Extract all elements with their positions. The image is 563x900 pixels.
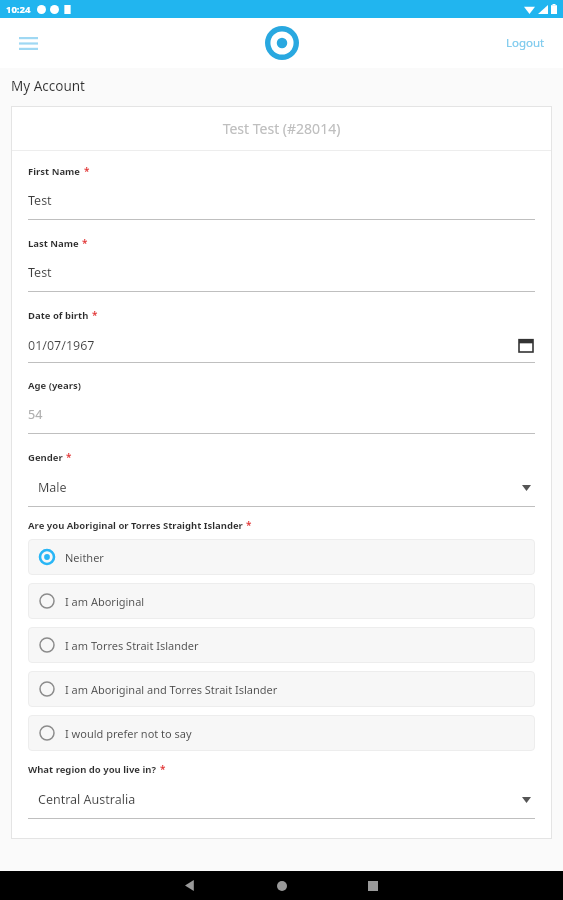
button[interactable]: Male (28, 464, 535, 507)
button[interactable]: Test (28, 250, 535, 292)
staticText: * (246, 518, 252, 532)
staticText: 10:24 (6, 3, 31, 16)
staticText: Age (years) (28, 379, 81, 392)
button[interactable]: Central Australia (28, 776, 535, 819)
staticText: 54 (28, 406, 43, 423)
staticText: * (84, 164, 90, 178)
button[interactable]: Recent apps (327, 871, 418, 900)
button[interactable]: I would prefer not to say (28, 715, 535, 751)
staticText: Date of birth (28, 309, 89, 322)
staticText: Male (38, 479, 67, 496)
staticText: 01/07/1967 (28, 337, 95, 354)
button[interactable]: Home (262, 23, 302, 63)
staticText: What region do you live in? (28, 763, 157, 776)
staticText: Test (28, 192, 52, 209)
staticText: Are you Aboriginal or Torres Straight Is… (28, 519, 243, 532)
staticText: Last Name (28, 237, 79, 250)
button[interactable]: 54 (28, 392, 535, 434)
button[interactable]: I am Aboriginal and Torres Strait Island… (28, 671, 535, 707)
staticText: Logout (506, 35, 545, 51)
staticText: Central Australia (38, 791, 136, 808)
button[interactable]: I am Torres Strait Islander (28, 627, 535, 663)
staticText: My Account (11, 77, 85, 95)
button[interactable]: Back (145, 871, 236, 900)
button[interactable]: Home (236, 871, 327, 900)
staticText: * (82, 236, 88, 250)
staticText: * (66, 450, 72, 464)
staticText: I am Aboriginal (65, 594, 145, 609)
button[interactable]: Menu (11, 26, 45, 60)
staticText: I am Torres Strait Islander (65, 638, 199, 653)
button[interactable]: 01/07/1967 (28, 322, 535, 363)
staticText: I am Aboriginal and Torres Strait Island… (65, 682, 278, 697)
staticText: * (160, 762, 166, 776)
staticText: Gender (28, 451, 63, 464)
staticText: Test (28, 264, 52, 281)
button[interactable]: Test (28, 178, 535, 220)
other: Pick date (517, 336, 535, 354)
staticText: First Name (28, 165, 81, 178)
staticText: * (92, 308, 98, 322)
button[interactable]: Neither (28, 539, 535, 575)
button[interactable]: I am Aboriginal (28, 583, 535, 619)
staticText: Test Test (#28014) (11, 119, 552, 138)
staticText: Neither (65, 550, 104, 565)
staticText: I would prefer not to say (65, 726, 192, 741)
button[interactable]: Logout (498, 27, 553, 59)
